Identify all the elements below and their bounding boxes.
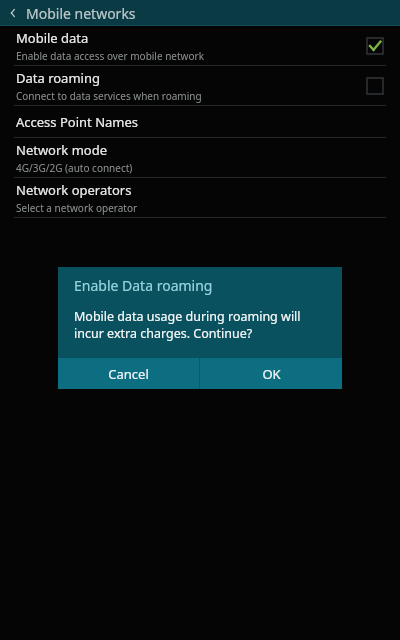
button[interactable]: Back — [0, 0, 26, 26]
button[interactable]: Cancel — [58, 358, 199, 389]
staticText: Network mode — [16, 141, 108, 159]
staticText: Select a network operator — [16, 201, 138, 215]
button[interactable]: Network operators — [0, 178, 400, 217]
staticText: Data roaming — [16, 69, 100, 87]
staticText: Access Point Names — [16, 113, 139, 131]
staticText: Mobile data usage during roaming will in… — [74, 308, 328, 342]
staticText: Enable Data roaming — [74, 276, 213, 295]
staticText: Mobile data — [16, 29, 89, 47]
button[interactable]: Access Point Names — [0, 106, 400, 137]
staticText: Mobile networks — [26, 4, 136, 23]
staticText: Cancel — [108, 365, 149, 383]
button[interactable]: Network mode — [0, 138, 400, 177]
button[interactable]: Unchecked — [366, 77, 384, 95]
staticText: 4G/3G/2G (auto connect) — [16, 161, 133, 175]
button[interactable]: OK — [200, 358, 342, 389]
staticText: OK — [262, 365, 281, 383]
button[interactable]: Checked — [366, 37, 384, 55]
staticText: Connect to data services when roaming — [16, 89, 202, 103]
staticText: Enable data access over mobile network — [16, 49, 204, 63]
button[interactable]: Data roaming — [0, 66, 400, 105]
button[interactable]: Mobile data — [0, 26, 400, 65]
staticText: Network operators — [16, 181, 132, 199]
